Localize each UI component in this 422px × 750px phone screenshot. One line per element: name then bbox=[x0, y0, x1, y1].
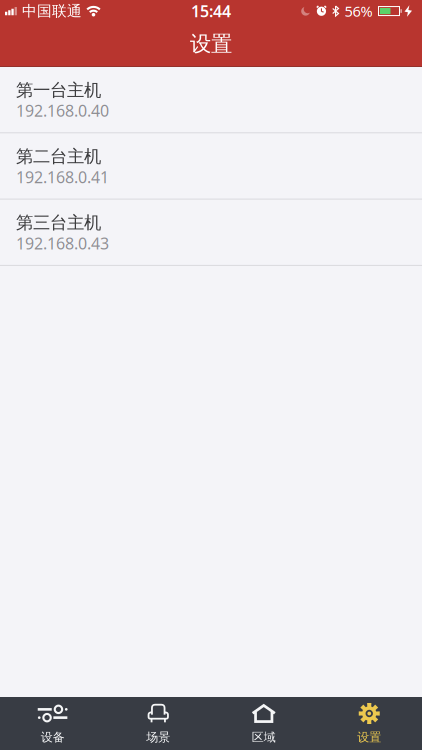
staticText: 第三台主机 bbox=[16, 212, 101, 233]
button[interactable]: 设置 bbox=[316, 697, 422, 750]
staticText: 设置 bbox=[190, 31, 232, 57]
staticText: 设置 bbox=[357, 730, 381, 745]
staticText: 192.168.0.40 bbox=[16, 100, 109, 121]
staticText: 第二台主机 bbox=[16, 146, 101, 167]
staticText: 中国联通 bbox=[22, 2, 82, 20]
button[interactable]: 第三台主机 bbox=[0, 200, 422, 266]
button[interactable]: 设备 bbox=[0, 697, 105, 750]
staticText: 区域 bbox=[252, 730, 276, 745]
button[interactable]: 场景 bbox=[105, 697, 211, 750]
staticText: 15:44 bbox=[191, 0, 231, 22]
button[interactable]: 第一台主机 bbox=[0, 67, 422, 133]
staticText: 56% bbox=[344, 1, 372, 21]
staticText: 第一台主机 bbox=[16, 79, 101, 101]
staticText: 192.168.0.43 bbox=[16, 233, 109, 254]
staticText: 场景 bbox=[146, 730, 170, 745]
button[interactable]: 区域 bbox=[211, 697, 316, 750]
staticText: 192.168.0.41 bbox=[16, 166, 109, 187]
staticText: 设备 bbox=[41, 730, 65, 745]
button[interactable]: 第二台主机 bbox=[0, 133, 422, 200]
